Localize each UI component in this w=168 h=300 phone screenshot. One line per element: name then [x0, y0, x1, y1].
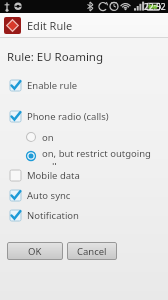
- staticText: OK: [28, 245, 42, 258]
- button[interactable]: Cancel: [67, 242, 117, 260]
- button[interactable]: Auto sync: [0, 186, 168, 205]
- staticText: on: [42, 131, 54, 144]
- staticText: Notification: [27, 209, 79, 222]
- button[interactable]: on, but restrict outgoing calls: [0, 147, 168, 165]
- staticText: Mobile data: [27, 169, 80, 182]
- button[interactable]: Notification: [0, 206, 168, 225]
- staticText: Cancel: [77, 245, 107, 258]
- staticText: on, but restrict outgoing calls: [42, 147, 168, 165]
- staticText: Phone radio (calls): [27, 110, 109, 123]
- button[interactable]: on: [0, 128, 168, 146]
- button[interactable]: Mobile data: [0, 166, 168, 185]
- staticText: Edit Rule: [27, 18, 73, 33]
- staticText: Enable rule: [27, 79, 78, 92]
- button[interactable]: App icon: [4, 17, 21, 34]
- button[interactable]: Enable rule: [0, 76, 168, 95]
- button[interactable]: OK: [7, 242, 63, 260]
- staticText: 22:52: [144, 1, 166, 13]
- staticText: Rule: EU Roaming: [7, 49, 104, 65]
- staticText: Auto sync: [27, 189, 71, 202]
- button[interactable]: Phone radio (calls): [0, 107, 168, 126]
